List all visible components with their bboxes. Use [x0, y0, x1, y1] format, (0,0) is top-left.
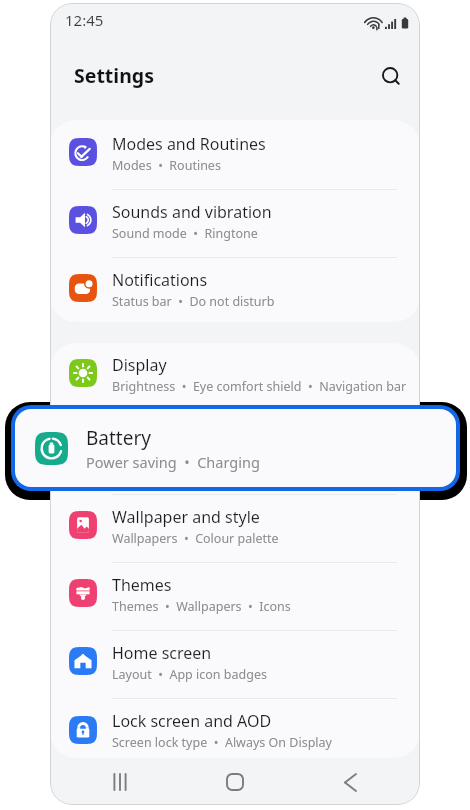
staticText: Modes • Routines [112, 157, 221, 174]
button[interactable]: Modes and Routines [50, 122, 420, 190]
staticText: Wallpapers • Colour palette [112, 530, 279, 547]
staticText: Brightness • Eye comfort shield • Naviga… [112, 378, 407, 395]
staticText: Wallpaper and style [112, 506, 260, 528]
button[interactable]: Sounds and vibration [50, 190, 420, 258]
button[interactable]: Back [328, 760, 372, 804]
staticText: Screen lock type • Always On Display [112, 734, 332, 751]
staticText: Themes [112, 574, 172, 596]
staticText: Home screen [112, 642, 212, 664]
staticText: Settings [74, 62, 154, 89]
button[interactable]: Notifications [50, 258, 420, 322]
staticText: Power saving • Charging [86, 452, 260, 472]
button[interactable]: Home screen [50, 631, 420, 699]
button[interactable]: Wallpaper and style [50, 495, 420, 563]
button[interactable]: Battery [50, 411, 420, 495]
staticText: Display [112, 354, 167, 376]
staticText: Notifications [112, 269, 208, 291]
button[interactable]: Themes [50, 563, 420, 631]
staticText: Modes and Routines [112, 133, 266, 155]
button[interactable]: Display [50, 343, 420, 411]
button[interactable]: Home [213, 760, 257, 804]
staticText: Sounds and vibration [112, 201, 272, 223]
staticText: Battery [112, 430, 167, 452]
staticText: Themes • Wallpapers • Icons [112, 598, 291, 615]
staticText: Status bar • Do not disturb [112, 293, 275, 310]
button[interactable]: Search [372, 57, 410, 95]
staticText: Layout • App icon badges [112, 666, 267, 683]
staticText: Sound mode • Ringtone [112, 225, 258, 242]
staticText: Lock screen and AOD [112, 710, 272, 732]
staticText: Battery [86, 425, 151, 451]
staticText: Power saving • Charging [112, 454, 262, 471]
button[interactable]: Lock screen and AOD [50, 699, 420, 758]
button[interactable]: Recents [98, 760, 142, 804]
button[interactable]: Battery [15, 409, 456, 487]
staticText: 12:45 [65, 10, 104, 30]
